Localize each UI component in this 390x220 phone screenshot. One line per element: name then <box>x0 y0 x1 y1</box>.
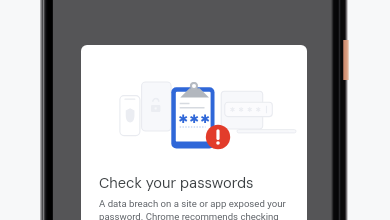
staticText: A data breach on a site or app exposed y… <box>99 198 287 220</box>
staticText: Check your passwords <box>99 174 254 193</box>
